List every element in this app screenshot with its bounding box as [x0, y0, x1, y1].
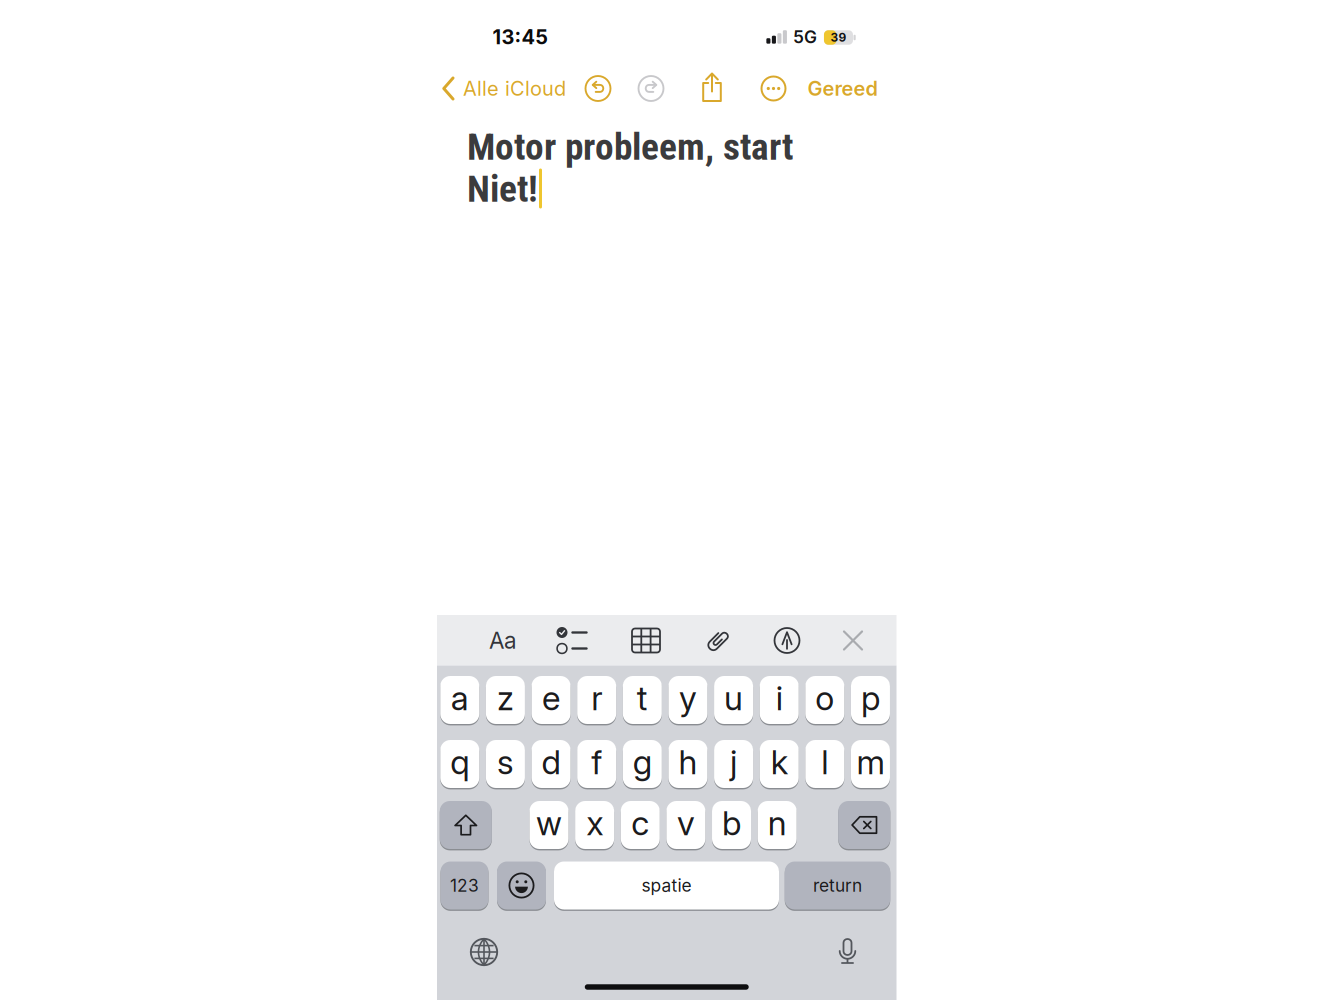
staticText: h	[678, 742, 697, 782]
staticText: Alle iCloud	[463, 77, 566, 100]
staticText: Motor probleem, start	[467, 125, 793, 169]
button[interactable]: return	[785, 860, 890, 910]
button[interactable]: Herstel	[584, 75, 611, 102]
staticText: 13:45	[492, 25, 547, 49]
button[interactable]: Verwijder	[838, 800, 890, 850]
button[interactable]: m	[851, 739, 890, 789]
button[interactable]: 123	[440, 860, 488, 910]
button[interactable]: v	[666, 800, 705, 850]
staticText: l	[821, 742, 828, 782]
button[interactable]: g	[623, 739, 662, 789]
button[interactable]: u	[714, 675, 753, 725]
button[interactable]: Volgend toetsenbord	[470, 938, 498, 966]
staticText: c	[631, 803, 649, 843]
staticText: b	[722, 803, 741, 843]
button[interactable]: Emoji	[497, 860, 546, 910]
staticText: s	[497, 742, 514, 782]
staticText: return	[813, 875, 862, 896]
button[interactable]: f	[577, 739, 616, 789]
button[interactable]: Meer	[760, 75, 786, 101]
staticText: spatie	[641, 875, 691, 896]
button[interactable]: Alle iCloud	[442, 76, 566, 100]
button[interactable]: t	[623, 675, 662, 725]
button[interactable]: q	[440, 739, 479, 789]
staticText: k	[771, 742, 788, 782]
button[interactable]: h	[668, 739, 707, 789]
staticText: x	[586, 803, 603, 843]
staticText: i	[776, 678, 783, 718]
button[interactable]: z	[486, 675, 525, 725]
button[interactable]: Gereed	[807, 77, 877, 100]
button[interactable]: n	[758, 800, 797, 850]
button[interactable]: o	[805, 675, 844, 725]
button[interactable]: e	[532, 675, 571, 725]
staticText: a	[451, 678, 469, 718]
staticText: f	[591, 742, 602, 782]
staticText: e	[542, 678, 560, 718]
staticText: w	[536, 803, 562, 843]
button[interactable]: Deel	[699, 71, 725, 102]
staticText: u	[724, 678, 743, 718]
staticText: 39	[830, 30, 846, 45]
staticText: q	[450, 742, 469, 782]
button[interactable]: a	[440, 675, 479, 725]
button[interactable]: l	[805, 739, 844, 789]
staticText: r	[591, 678, 602, 718]
button[interactable]: Tabel	[631, 627, 661, 653]
staticText: Aa	[489, 627, 517, 654]
button[interactable]: j	[714, 739, 753, 789]
button[interactable]: c	[621, 800, 660, 850]
staticText: y	[679, 678, 697, 718]
button[interactable]: Dicteer	[836, 938, 859, 964]
button[interactable]: Bijlage	[708, 627, 728, 654]
staticText: Gereed	[807, 77, 877, 100]
button[interactable]: x	[575, 800, 614, 850]
staticText: v	[677, 803, 695, 843]
staticText: d	[542, 742, 561, 782]
staticText: p	[861, 678, 880, 718]
button[interactable]: d	[532, 739, 571, 789]
staticText: m	[856, 742, 884, 782]
button[interactable]: r	[577, 675, 616, 725]
button[interactable]: Shift	[440, 800, 492, 850]
staticText: Niet!	[467, 167, 538, 211]
staticText: j	[730, 742, 737, 782]
button[interactable]: Markeringen	[773, 627, 800, 654]
button[interactable]: k	[760, 739, 799, 789]
button[interactable]: Sluit toetsenbord	[843, 630, 863, 650]
staticText: g	[633, 742, 652, 782]
staticText: 123	[450, 875, 479, 896]
button[interactable]: Checklist	[556, 627, 587, 654]
button[interactable]: Opnieuw	[637, 75, 664, 102]
button[interactable]: b	[712, 800, 751, 850]
button[interactable]: Opmaak	[489, 627, 517, 654]
button[interactable]: y	[668, 675, 707, 725]
staticText: z	[497, 678, 514, 718]
button[interactable]: p	[851, 675, 890, 725]
staticText: o	[815, 678, 834, 718]
staticText: 5G	[793, 27, 817, 47]
button[interactable]: s	[486, 739, 525, 789]
staticText: t	[637, 678, 648, 718]
button[interactable]: i	[760, 675, 799, 725]
button[interactable]: spatie	[554, 860, 779, 910]
staticText: n	[768, 803, 787, 843]
button[interactable]: w	[529, 800, 568, 850]
